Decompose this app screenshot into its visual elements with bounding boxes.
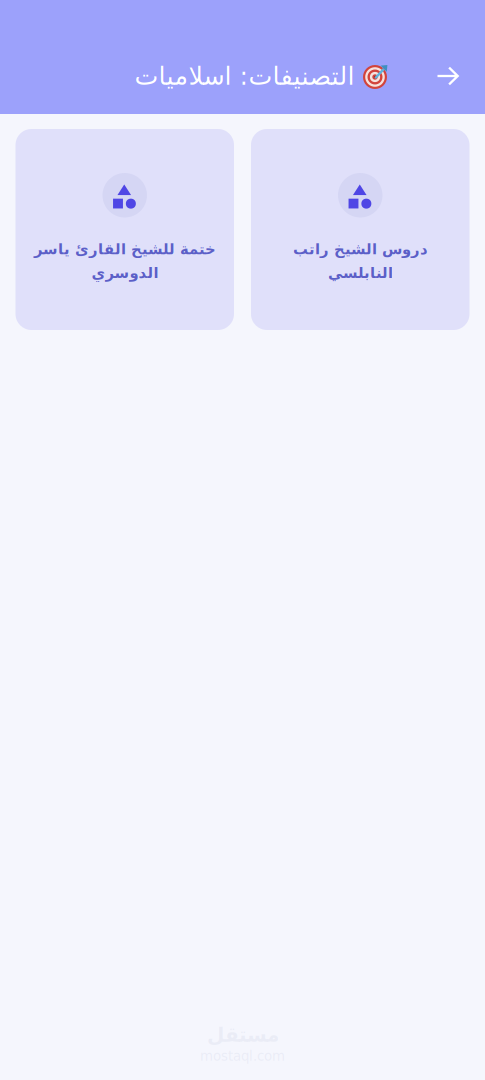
staticText: التصنيفات: اسلاميات [134,61,354,91]
staticText: ختمة للشيخ القارئ ياسر الدوسري [34,240,216,281]
button[interactable]: ختمة للشيخ القارئ ياسر الدوسري [15,129,234,330]
staticText: mostaql.com [200,1048,285,1064]
button[interactable]: دروس الشيخ راتب النابلسي [251,129,469,330]
button[interactable]: Back [426,54,470,98]
staticText: مستقل [206,1023,278,1046]
staticText: دروس الشيخ راتب النابلسي [293,240,428,281]
